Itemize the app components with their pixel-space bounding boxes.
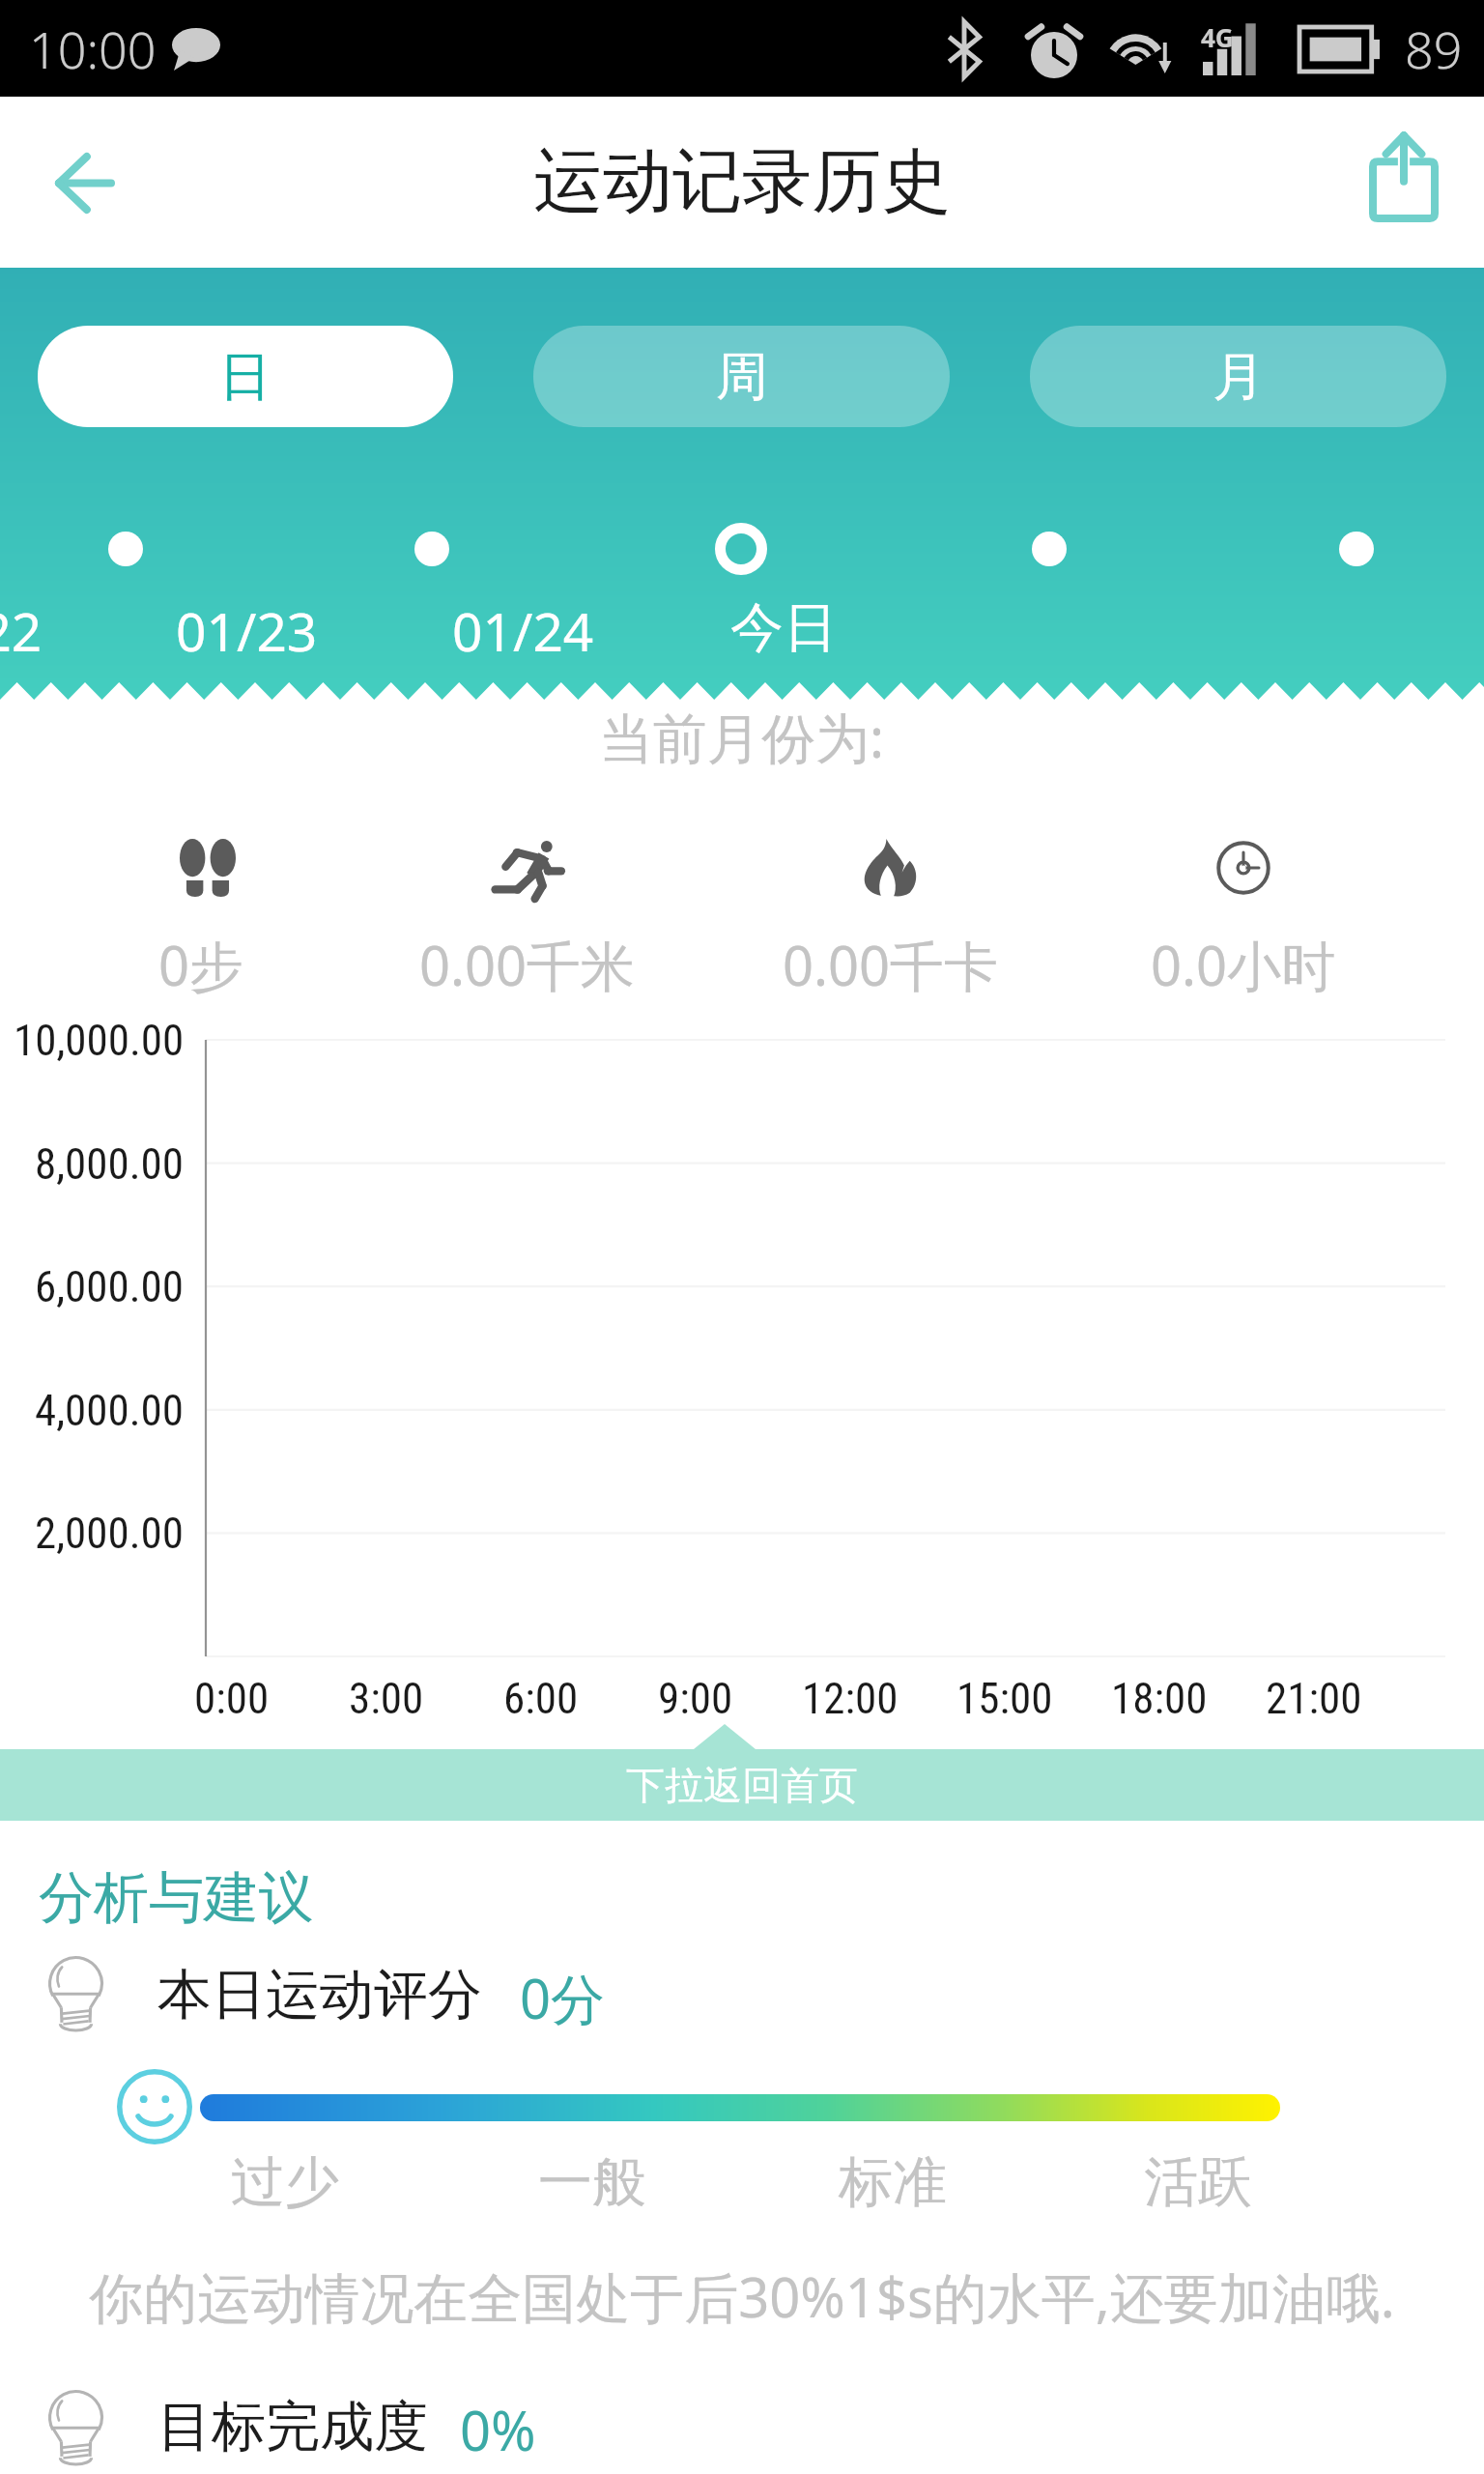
staticText: 18:00	[1111, 1673, 1208, 1724]
staticText: 6,000.00	[35, 1261, 185, 1312]
staticText: 4G	[1201, 20, 1234, 54]
staticText: 一般	[538, 2148, 646, 2217]
staticText: 运动记录历史	[533, 138, 951, 226]
staticText: 你的运动情况在全国处于后30%1$s的水平,还要加油哦.	[89, 2259, 1395, 2327]
staticText: 今日	[730, 594, 837, 658]
button[interactable]: January 22	[0, 478, 116, 658]
staticText: 0:00	[194, 1673, 270, 1724]
staticText: 01/22	[0, 594, 43, 658]
staticText: 目标完成度	[157, 2393, 428, 2461]
staticText: 4,000.00	[35, 1385, 185, 1436]
staticText: 标准	[839, 2148, 947, 2217]
button[interactable]: Pull to return home	[0, 1724, 1484, 1821]
button[interactable]: 日	[38, 326, 453, 427]
staticText: 10:00	[29, 14, 157, 83]
staticText: 本日运动评分	[157, 1961, 482, 2029]
staticText: 8,000.00	[35, 1138, 185, 1190]
staticText: 分析与建议	[39, 1863, 314, 1933]
staticText: 周	[716, 344, 768, 410]
button[interactable]: January 24	[378, 478, 668, 658]
staticText: 10,000.00	[14, 1015, 185, 1066]
staticText: 活跃	[1144, 2148, 1252, 2217]
staticText: 0.00千卡	[783, 928, 999, 999]
staticText: 当前月份为:	[599, 700, 885, 767]
button[interactable]: 周	[533, 326, 950, 427]
staticText: 01/23	[176, 594, 318, 658]
staticText: 月	[1213, 344, 1265, 410]
button[interactable]: January 23	[101, 478, 391, 658]
staticText: 2,000.00	[35, 1508, 185, 1559]
staticText: 6:00	[503, 1673, 579, 1724]
button[interactable]: Share	[1354, 127, 1454, 227]
staticText: 下拉返回首页	[626, 1761, 858, 1809]
staticText: 0分	[520, 1961, 606, 2034]
staticText: 日	[219, 344, 271, 410]
staticText: 21:00	[1266, 1673, 1362, 1724]
staticText: 0步	[158, 928, 244, 999]
button[interactable]: Today	[639, 478, 928, 658]
staticText: 9:00	[658, 1673, 733, 1724]
staticText: 3:00	[349, 1673, 424, 1724]
staticText: 0.00千米	[419, 928, 636, 999]
staticText: 01/24	[452, 594, 594, 658]
button[interactable]: 月	[1030, 326, 1446, 427]
staticText: 15:00	[956, 1673, 1053, 1724]
staticText: 过少	[231, 2148, 339, 2217]
staticText: 0%	[460, 2393, 536, 2466]
staticText: 89	[1405, 14, 1463, 83]
staticText: 12:00	[802, 1673, 899, 1724]
button[interactable]: Back	[35, 132, 135, 233]
staticText: 0.0小时	[1151, 928, 1336, 999]
